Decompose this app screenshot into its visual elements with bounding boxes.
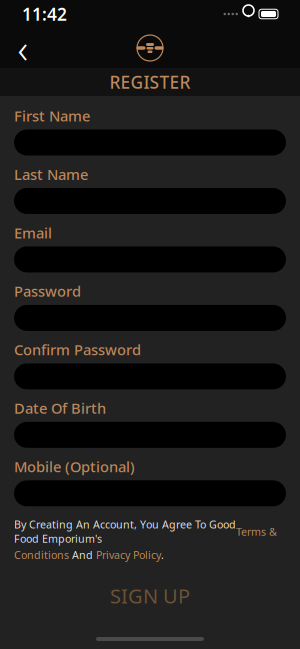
staticText: . [161, 548, 164, 562]
staticText: ‹ [17, 21, 28, 74]
staticText: Confirm Password [14, 340, 141, 359]
button[interactable]: Conditions [14, 548, 69, 562]
button[interactable] [14, 188, 286, 214]
button[interactable] [14, 480, 286, 506]
button[interactable] [14, 129, 286, 155]
staticText: By Creating An Account, You Agree To Goo… [14, 517, 236, 546]
button[interactable] [14, 363, 286, 389]
button[interactable]: SIGN UP [0, 574, 300, 618]
staticText: REGISTER [109, 70, 190, 93]
button[interactable] [14, 246, 286, 272]
staticText: Privacy Policy [96, 548, 161, 562]
button[interactable]: Privacy Policy [96, 548, 161, 562]
button[interactable]: Terms & [236, 524, 277, 539]
staticText: Email [14, 223, 52, 242]
staticText: And [69, 548, 96, 562]
staticText: Terms & [236, 524, 277, 539]
staticText: Password [14, 281, 81, 301]
staticText: Last Name [14, 164, 88, 184]
staticText: SIGN UP [110, 583, 190, 609]
button[interactable]: Back [6, 31, 40, 65]
staticText: First Name [14, 106, 90, 125]
staticText: 11:42 [22, 2, 67, 25]
staticText: Mobile (Optional) [14, 457, 135, 476]
button[interactable] [14, 305, 286, 331]
staticText: Conditions [14, 548, 69, 562]
button[interactable] [14, 422, 286, 448]
staticText: Date Of Birth [14, 398, 106, 418]
